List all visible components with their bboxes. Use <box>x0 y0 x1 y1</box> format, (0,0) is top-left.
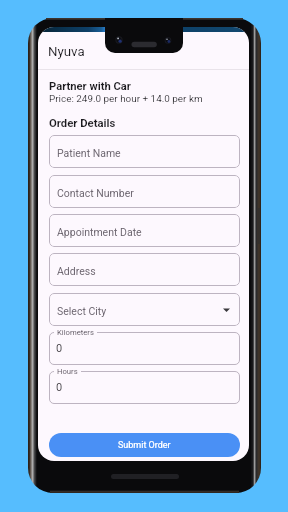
staticText: Kilometers <box>57 328 94 337</box>
staticText: Nyuva <box>48 44 85 60</box>
staticText: Contact Number <box>57 187 134 199</box>
staticText: 0 <box>56 381 63 394</box>
staticText: 0 <box>56 342 63 355</box>
button[interactable]: Appointment Date <box>49 214 240 247</box>
button[interactable]: 0 <box>49 332 240 365</box>
staticText: Partner with Car <box>49 80 131 93</box>
button[interactable]: Nyuva <box>38 32 249 69</box>
button[interactable]: Patient Name <box>49 135 240 168</box>
button[interactable]: Submit Order <box>49 433 240 457</box>
other: Select city <box>223 306 230 313</box>
button[interactable]: Select City <box>49 293 240 326</box>
button[interactable]: Address <box>49 253 240 286</box>
staticText: Price: 249.0 per hour + 14.0 per km <box>49 93 203 105</box>
button[interactable]: 0 <box>49 371 240 404</box>
staticText: Submit Order <box>118 440 171 451</box>
staticText: Hours <box>57 367 78 376</box>
staticText: Order Details <box>49 117 116 130</box>
staticText: Address <box>57 265 96 277</box>
staticText: Patient Name <box>57 147 121 159</box>
staticText: Select City <box>57 305 107 317</box>
button[interactable]: Contact Number <box>49 175 240 208</box>
staticText: Appointment Date <box>57 226 142 238</box>
